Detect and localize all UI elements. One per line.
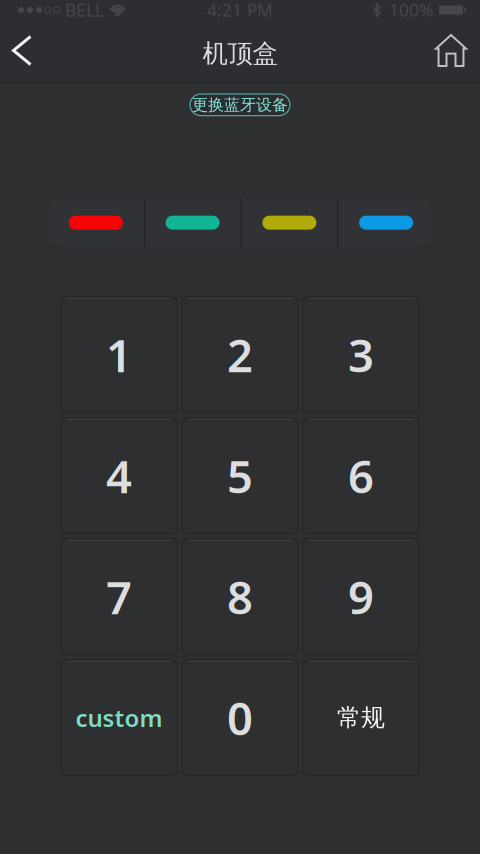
staticText: 4:21 PM bbox=[207, 0, 273, 21]
button[interactable]: 8 bbox=[182, 539, 298, 655]
button[interactable]: 6 bbox=[303, 418, 419, 534]
staticText: 常规 bbox=[337, 703, 385, 732]
button[interactable]: 4 bbox=[61, 418, 177, 534]
staticText: 2 bbox=[227, 325, 253, 385]
button[interactable]: Green bbox=[145, 198, 241, 248]
button[interactable]: 7 bbox=[61, 539, 177, 655]
staticText: 6 bbox=[348, 446, 374, 506]
staticText: 100% bbox=[389, 0, 433, 21]
button[interactable]: 1 bbox=[61, 297, 177, 413]
button[interactable]: 3 bbox=[303, 297, 419, 413]
button[interactable]: Blue bbox=[338, 198, 434, 248]
staticText: 1 bbox=[106, 325, 132, 385]
staticText: 5 bbox=[227, 446, 253, 506]
staticText: BELL bbox=[65, 0, 104, 21]
staticText: 4 bbox=[106, 446, 132, 506]
staticText: 9 bbox=[348, 567, 374, 627]
button[interactable]: 常规 bbox=[303, 660, 419, 776]
button[interactable]: 2 bbox=[182, 297, 298, 413]
button[interactable]: 9 bbox=[303, 539, 419, 655]
button[interactable]: 更换蓝牙设备 bbox=[190, 94, 290, 116]
button[interactable]: custom bbox=[61, 660, 177, 776]
button[interactable]: 5 bbox=[182, 418, 298, 534]
staticText: custom bbox=[75, 702, 162, 734]
staticText: 机顶盒 bbox=[202, 38, 277, 69]
button[interactable]: Home bbox=[422, 20, 480, 81]
button[interactable]: 0 bbox=[182, 660, 298, 776]
button[interactable]: Yellow bbox=[241, 198, 337, 248]
staticText: 3 bbox=[348, 325, 374, 385]
staticText: 7 bbox=[106, 567, 132, 627]
staticText: 8 bbox=[227, 567, 253, 627]
button[interactable]: Back bbox=[0, 20, 44, 81]
staticText: 0 bbox=[227, 688, 253, 748]
staticText: 更换蓝牙设备 bbox=[192, 95, 288, 115]
button[interactable]: Red bbox=[48, 198, 144, 248]
